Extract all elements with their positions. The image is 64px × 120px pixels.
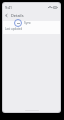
staticText: Details [11, 13, 24, 18]
button[interactable]: Back [4, 13, 9, 18]
staticText: Last updated [5, 27, 23, 31]
staticText: 9:41 [5, 5, 12, 10]
button[interactable]: Sync [14, 19, 60, 27]
staticText: Sync [24, 21, 31, 25]
